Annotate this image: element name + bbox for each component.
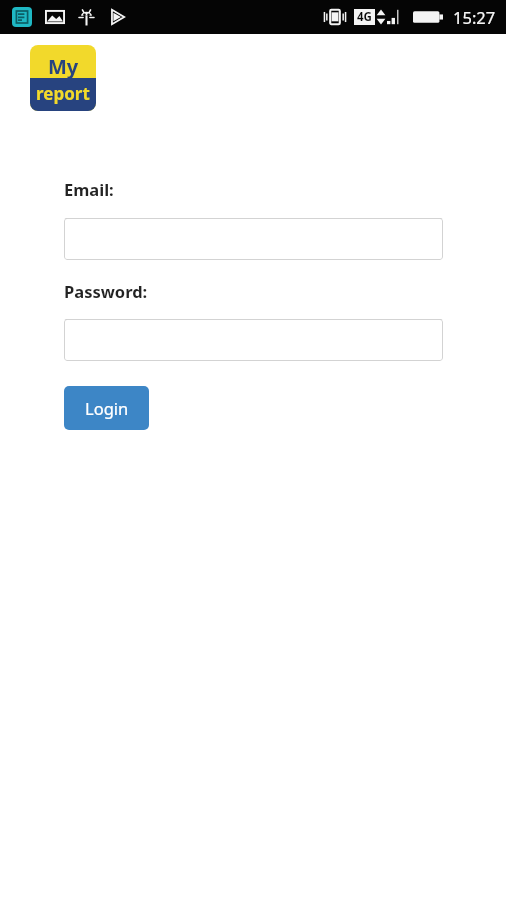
button[interactable] bbox=[64, 218, 443, 260]
button[interactable] bbox=[64, 319, 443, 361]
staticText: Password: bbox=[64, 280, 148, 302]
button[interactable]: Login bbox=[64, 386, 149, 430]
staticText: 4G bbox=[357, 9, 372, 25]
staticText: Login bbox=[85, 397, 129, 419]
staticText: 15:27 bbox=[453, 6, 496, 28]
staticText: Email: bbox=[64, 178, 114, 200]
staticText: report bbox=[36, 82, 90, 105]
other: My report logo bbox=[30, 45, 96, 111]
staticText: My bbox=[48, 53, 79, 80]
